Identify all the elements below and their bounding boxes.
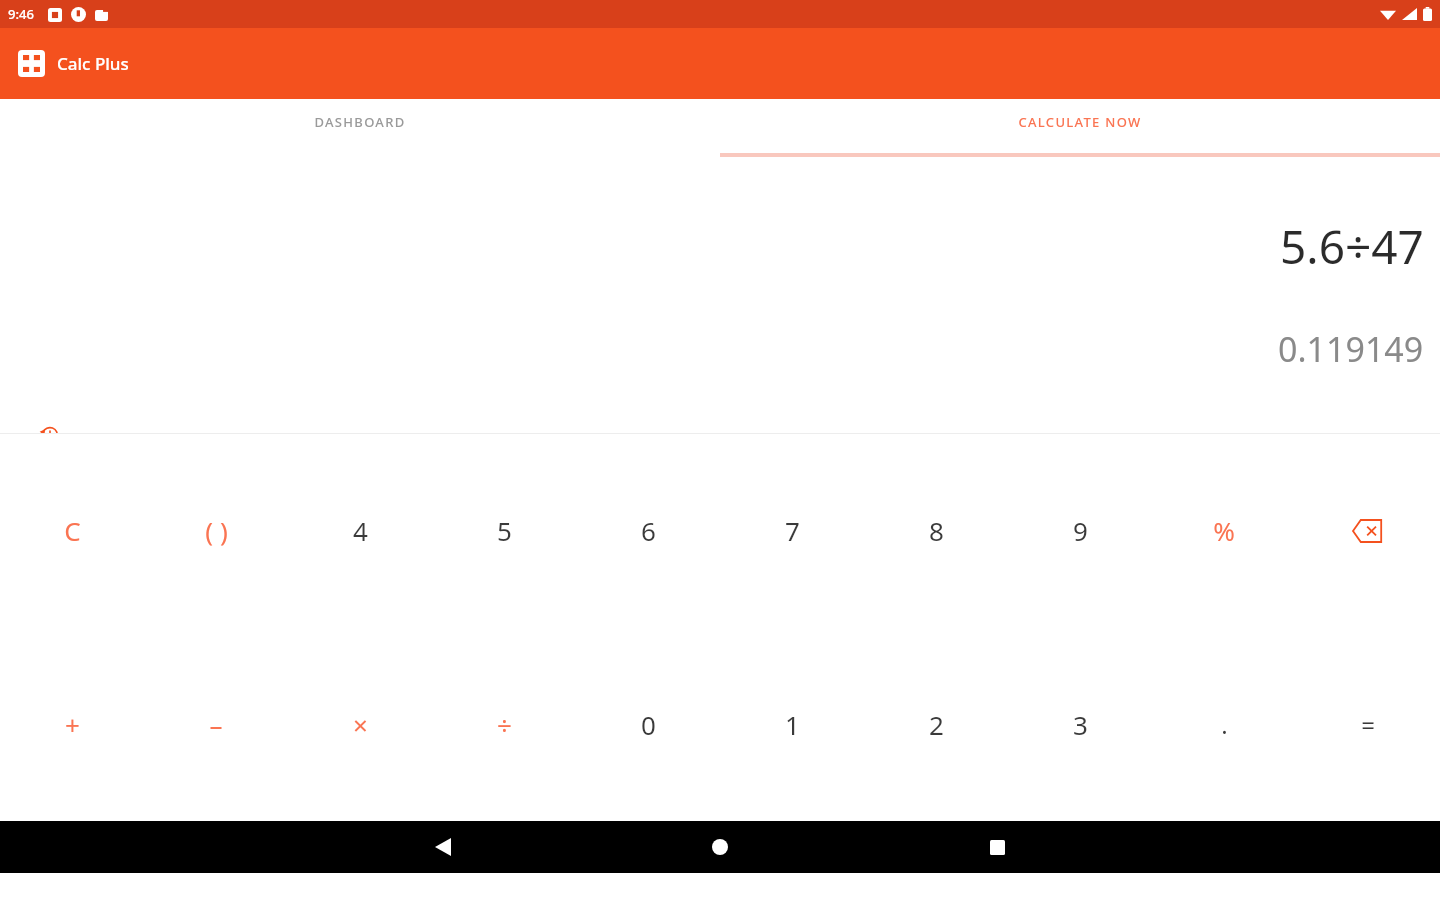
- button[interactable]: Backspace: [1296, 434, 1440, 627]
- staticText: –: [209, 707, 223, 742]
- staticText: 3: [1073, 707, 1088, 742]
- button[interactable]: 1: [720, 627, 864, 821]
- button[interactable]: ÷: [432, 627, 576, 821]
- staticText: 8: [929, 513, 944, 548]
- staticText: Calc Plus: [57, 52, 129, 75]
- button[interactable]: Recents: [965, 821, 1029, 873]
- button[interactable]: Back: [411, 821, 475, 873]
- button[interactable]: –: [144, 627, 288, 821]
- staticText: 1: [785, 707, 800, 742]
- button[interactable]: C: [0, 434, 144, 627]
- staticText: 6: [641, 513, 656, 548]
- button[interactable]: ×: [288, 627, 432, 821]
- staticText: 5.6÷47: [1280, 215, 1424, 278]
- button[interactable]: History: [30, 415, 70, 455]
- button[interactable]: 7: [720, 434, 864, 627]
- button[interactable]: 5: [432, 434, 576, 627]
- staticText: 9:46: [8, 5, 34, 23]
- staticText: ×: [353, 707, 368, 742]
- staticText: 4: [353, 513, 368, 548]
- staticText: 0: [641, 707, 656, 742]
- staticText: +: [65, 707, 80, 742]
- button[interactable]: +: [0, 627, 144, 821]
- button[interactable]: 3: [1008, 627, 1152, 821]
- staticText: CALCULATE NOW: [1018, 113, 1142, 131]
- staticText: 5: [497, 513, 512, 548]
- staticText: C: [64, 513, 81, 548]
- staticText: =: [1361, 708, 1375, 741]
- staticText: 9: [1073, 513, 1088, 548]
- button[interactable]: 2: [864, 627, 1008, 821]
- button[interactable]: DASHBOARD: [0, 99, 720, 157]
- button[interactable]: 4: [288, 434, 432, 627]
- button[interactable]: 0: [576, 627, 720, 821]
- staticText: .: [1221, 708, 1228, 741]
- staticText: DASHBOARD: [314, 113, 406, 131]
- button[interactable]: 6: [576, 434, 720, 627]
- staticText: 0.119149: [1278, 326, 1424, 372]
- button[interactable]: ( ): [144, 434, 288, 627]
- button[interactable]: Home: [688, 821, 752, 873]
- button[interactable]: =: [1296, 627, 1440, 821]
- staticText: 2: [929, 707, 944, 742]
- button[interactable]: 9: [1008, 434, 1152, 627]
- staticText: %: [1213, 513, 1235, 548]
- button[interactable]: %: [1152, 434, 1296, 627]
- staticText: ( ): [205, 513, 228, 548]
- staticText: ÷: [497, 707, 512, 742]
- button[interactable]: 8: [864, 434, 1008, 627]
- staticText: 7: [785, 513, 800, 548]
- button[interactable]: Calc Plus logo: [18, 50, 45, 77]
- button[interactable]: CALCULATE NOW: [720, 99, 1440, 157]
